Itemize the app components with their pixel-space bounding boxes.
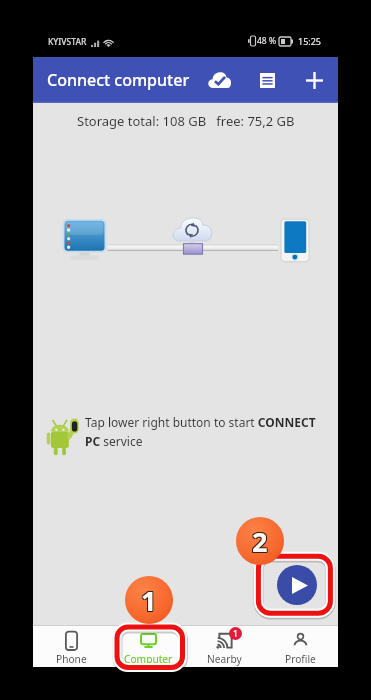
button[interactable]: Computer xyxy=(110,625,186,667)
staticText: 1 xyxy=(140,583,156,620)
staticText: 2 xyxy=(253,524,269,561)
staticText: Phone xyxy=(56,652,87,666)
staticText: 2 xyxy=(252,524,268,561)
staticText: 2 xyxy=(251,524,267,561)
staticText: 1 xyxy=(141,581,157,618)
button[interactable]: List xyxy=(251,64,283,96)
staticText: 2 xyxy=(253,522,269,559)
staticText: 1 xyxy=(142,583,158,620)
button[interactable]: Profile xyxy=(262,625,338,667)
button[interactable]: Phone xyxy=(33,625,110,667)
staticText: Connect computer xyxy=(47,69,190,91)
staticText: 1 xyxy=(142,581,158,618)
staticText: 2 xyxy=(251,522,267,559)
button[interactable]: Add xyxy=(297,63,331,97)
staticText: 2 xyxy=(252,523,268,560)
staticText: 2 xyxy=(253,523,269,560)
staticText: 1 xyxy=(140,581,156,618)
button[interactable]: 1 xyxy=(186,625,262,667)
staticText: 1 xyxy=(140,582,156,619)
staticText: 2 xyxy=(252,522,268,559)
staticText: 2 xyxy=(251,523,267,560)
button[interactable]: Cloud backup done xyxy=(202,63,236,97)
staticText: 1 xyxy=(142,582,158,619)
staticText: 1 xyxy=(233,628,238,640)
staticText: Nearby xyxy=(207,652,242,666)
button[interactable]: Start service xyxy=(277,565,317,605)
staticText: 48 % xyxy=(257,35,276,47)
staticText: 1 xyxy=(141,582,157,619)
staticText: KYIVSTAR xyxy=(48,36,87,48)
staticText: Computer xyxy=(124,652,173,666)
staticText: Profile xyxy=(285,652,316,666)
staticText: 1 xyxy=(141,583,157,620)
staticText: Storage total: 108 GB free: 75,2 GB xyxy=(77,112,295,130)
staticText: 15:25 xyxy=(298,35,322,47)
staticText: Tap lower right button to start CONNECT … xyxy=(85,414,317,449)
